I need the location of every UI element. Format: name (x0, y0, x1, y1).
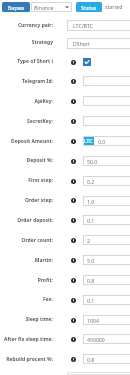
staticText: Profit: (37, 277, 53, 284)
button[interactable]: 50.0 (83, 156, 130, 166)
staticText: 0.0 (98, 138, 106, 145)
staticText: LTC/BTC (73, 22, 94, 29)
button[interactable]: 0.1 (83, 295, 130, 305)
staticText: Биржа (8, 4, 25, 11)
button[interactable]: 0.1 (83, 215, 130, 225)
button[interactable]: 0.8 (83, 354, 130, 364)
staticText: Type of Short i (17, 58, 53, 65)
staticText: 1.0 (87, 198, 95, 205)
staticText: 0.2 (87, 178, 95, 185)
button[interactable]: 2 (83, 235, 130, 245)
staticText: 0.8 (87, 356, 95, 363)
button[interactable] (83, 116, 130, 126)
button[interactable]: 450000 (83, 334, 130, 344)
staticText: Deposit Amount: (11, 138, 53, 145)
button[interactable]: Binance (31, 2, 72, 12)
button[interactable]: 1004 (83, 315, 130, 325)
staticText: Strategy (31, 39, 53, 46)
staticText: Deposit %: (26, 157, 53, 164)
staticText: Rebuild procent %: (6, 356, 53, 363)
staticText: Status (81, 4, 97, 11)
staticText: Sleep time: (25, 316, 53, 323)
staticText: started (105, 3, 123, 10)
button[interactable]: Type of short checkbox (83, 58, 91, 66)
staticText: Telegram Id: (22, 78, 53, 85)
staticText: Order count: (21, 237, 53, 244)
button[interactable]: 1.0 (83, 196, 130, 206)
button[interactable]: Биржа (2, 2, 30, 12)
staticText: 0.1 (87, 217, 95, 224)
staticText: After fix sleep time: (3, 336, 53, 343)
button[interactable]: LTC/BTC (67, 20, 130, 31)
button[interactable]: 5.0 (83, 255, 130, 265)
staticText: SecretKey: (26, 118, 53, 125)
staticText: Binance (34, 4, 54, 11)
button[interactable]: Status (76, 2, 102, 12)
staticText: Order deposit: (17, 217, 53, 224)
staticText: Fee: (42, 296, 53, 303)
staticText: 2 (87, 237, 90, 244)
staticText: 0.1 (87, 297, 95, 304)
button[interactable]: 0.2 (83, 176, 130, 186)
staticText: Currency pair: (17, 22, 53, 29)
staticText: First step: (28, 177, 53, 184)
staticText: 5.0 (87, 257, 95, 264)
button[interactable] (83, 96, 130, 106)
button[interactable]: 0.8 (83, 275, 130, 285)
staticText: 450000 (87, 336, 105, 343)
staticText: LTC (84, 138, 93, 145)
staticText: 1004 (87, 317, 99, 324)
staticText: DShort (73, 40, 90, 47)
staticText: 0.8 (87, 277, 95, 284)
button[interactable]: DShort (67, 38, 130, 49)
button[interactable] (83, 76, 130, 86)
button[interactable]: LTC (83, 136, 130, 146)
staticText: ApiKey: (34, 98, 53, 105)
staticText: Order step: (24, 197, 53, 204)
staticText: 50.0 (87, 158, 98, 165)
staticText: Martin: (34, 257, 53, 264)
